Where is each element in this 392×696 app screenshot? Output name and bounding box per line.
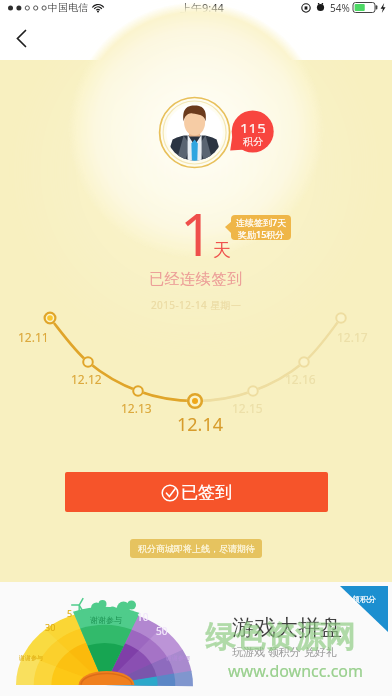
staticText: 奖励15积分 — [238, 228, 285, 240]
staticText: 谢谢参与 — [166, 654, 190, 662]
staticText: 玩游戏 领积分 兑好礼 — [232, 644, 337, 659]
staticText: 115 — [240, 118, 266, 133]
staticText: 12.15 — [232, 400, 263, 416]
staticText: 12.17 — [337, 329, 368, 345]
staticText: 积分 — [243, 135, 263, 147]
staticText: 5 — [67, 607, 73, 619]
staticText: 领积分 — [352, 594, 376, 604]
staticText: 中国电信 — [48, 1, 88, 14]
staticText: 游戏大拼盘 — [232, 614, 342, 642]
staticText: 连续签到7天 — [236, 216, 287, 228]
staticText: 12.11 — [18, 329, 49, 345]
staticText: 10 — [137, 610, 149, 624]
button[interactable]: Back — [0, 18, 42, 58]
button[interactable]: 积分商城即将上线，尽请期待 — [130, 539, 262, 558]
staticText: 12.12 — [71, 371, 102, 387]
staticText: 30 — [45, 621, 56, 633]
staticText: 12.16 — [285, 371, 316, 387]
staticText: 天 — [213, 239, 231, 262]
staticText: 已经连续签到 — [149, 270, 243, 289]
staticText: 54% — [330, 1, 350, 15]
staticText: 1 — [180, 194, 214, 273]
staticText: 积分商城即将上线，尽请期待 — [138, 543, 255, 554]
staticText: 2015-12-14 星期一 — [151, 298, 242, 312]
button[interactable]: 30 — [0, 582, 392, 696]
staticText: 绿色资源网 — [205, 618, 355, 656]
staticText: 谢谢参与 — [90, 615, 122, 625]
staticText: 谢谢参与 — [19, 654, 43, 662]
button[interactable]: 已签到 — [65, 472, 328, 512]
staticText: 已签到 — [181, 482, 232, 503]
staticText: www.downcc.com — [228, 660, 364, 682]
staticText: 上午9:44 — [180, 0, 224, 15]
staticText: 12.14 — [177, 412, 224, 437]
staticText: 50 — [156, 624, 168, 638]
staticText: 12.13 — [121, 400, 152, 416]
